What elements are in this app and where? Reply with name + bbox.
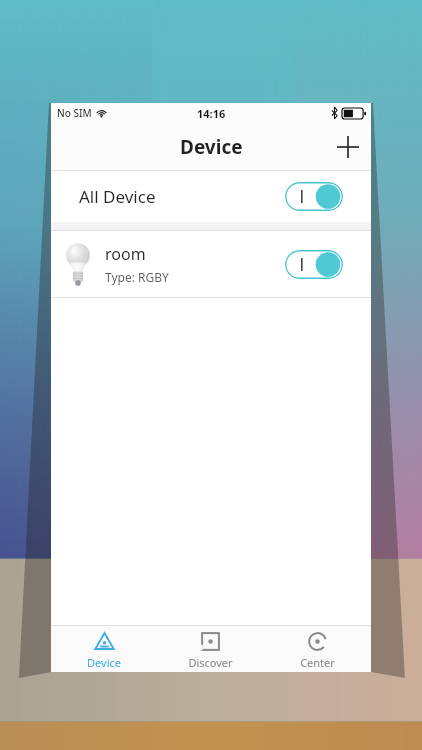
staticText: Discover [188, 655, 233, 670]
button[interactable]: Discover [157, 626, 264, 670]
button[interactable]: room [51, 231, 371, 297]
button[interactable]: Center [264, 626, 371, 670]
staticText: Center [300, 655, 335, 670]
button[interactable]: Power toggle, on [285, 250, 343, 279]
staticText: No SIM [57, 106, 92, 120]
staticText: 14:16 [197, 106, 226, 121]
staticText: Device [180, 134, 243, 160]
button[interactable]: Power toggle, on [285, 182, 343, 211]
staticText: All Device [79, 185, 156, 208]
button[interactable]: All Device [51, 171, 371, 222]
staticText: Type: RGBY [105, 269, 169, 285]
button[interactable]: Device [51, 626, 157, 670]
staticText: room [105, 243, 146, 265]
staticText: Device [87, 655, 121, 670]
button[interactable]: Add device [325, 124, 371, 170]
